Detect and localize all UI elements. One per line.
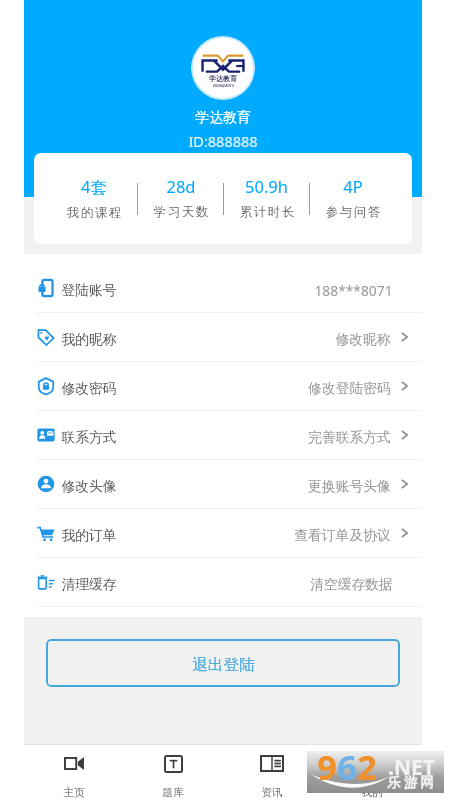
staticText: 退出登陆 <box>192 655 255 675</box>
staticText: 我的课程 <box>66 205 122 221</box>
staticText: 更换账号头像 <box>308 478 391 495</box>
staticText: 我的 <box>361 786 383 800</box>
button[interactable]: 退出登陆 <box>46 639 400 687</box>
button[interactable]: 主页 <box>24 744 123 800</box>
staticText: 完善联系方式 <box>308 429 391 446</box>
button[interactable]: 联系方式 <box>24 411 422 459</box>
button[interactable]: 修改密码 <box>24 362 422 410</box>
button[interactable]: 资讯 <box>222 744 322 800</box>
staticText: 乐游网 <box>387 774 437 791</box>
staticText: 题库 <box>162 786 184 800</box>
staticText: 修改密码 <box>61 380 117 397</box>
staticText: 学达教育 <box>195 109 251 126</box>
staticText: 累计时长 <box>239 204 295 220</box>
staticText: 联系方式 <box>61 429 117 446</box>
button[interactable]: 我的 <box>322 744 422 800</box>
staticText: 清空缓存数据 <box>310 576 393 593</box>
staticText: 4套 <box>81 175 107 198</box>
staticText: 资讯 <box>261 786 283 800</box>
button[interactable]: 4套 <box>51 153 137 244</box>
staticText: XUEDAJIAOYU <box>213 84 234 88</box>
staticText: 清理缓存 <box>61 576 117 593</box>
button[interactable]: 修改头像 <box>24 460 422 508</box>
button[interactable]: 清理缓存 <box>24 558 422 606</box>
staticText: 我的订单 <box>61 527 117 544</box>
staticText: 4P <box>343 175 363 197</box>
staticText: 学达教育 <box>209 74 237 83</box>
staticText: 修改昵称 <box>335 331 391 348</box>
staticText: ID:888888 <box>188 131 258 151</box>
staticText: 登陆账号 <box>61 282 117 299</box>
staticText: 学习天数 <box>153 204 209 220</box>
button[interactable]: 我的昵称 <box>24 313 422 361</box>
button[interactable]: 题库 <box>123 744 222 800</box>
button[interactable]: 我的订单 <box>24 509 422 557</box>
staticText: 主页 <box>63 786 85 800</box>
button[interactable]: 28d <box>138 153 223 244</box>
staticText: 修改头像 <box>61 478 117 495</box>
staticText: 6 <box>337 744 357 786</box>
staticText: 修改登陆密码 <box>308 380 391 397</box>
staticText: 9 <box>317 744 337 786</box>
staticText: 188***8071 <box>314 281 393 300</box>
staticText: 2 <box>357 744 377 786</box>
staticText: 我的昵称 <box>61 331 117 348</box>
staticText: .NET <box>388 753 435 782</box>
button[interactable]: 登陆账号 <box>24 264 422 312</box>
staticText: 28d <box>166 175 196 197</box>
staticText: 查看订单及协议 <box>294 527 391 544</box>
staticText: 50.9h <box>245 175 288 197</box>
button[interactable]: 4P <box>310 153 395 244</box>
button[interactable]: 50.9h <box>224 153 309 244</box>
staticText: 参与问答 <box>325 204 381 220</box>
